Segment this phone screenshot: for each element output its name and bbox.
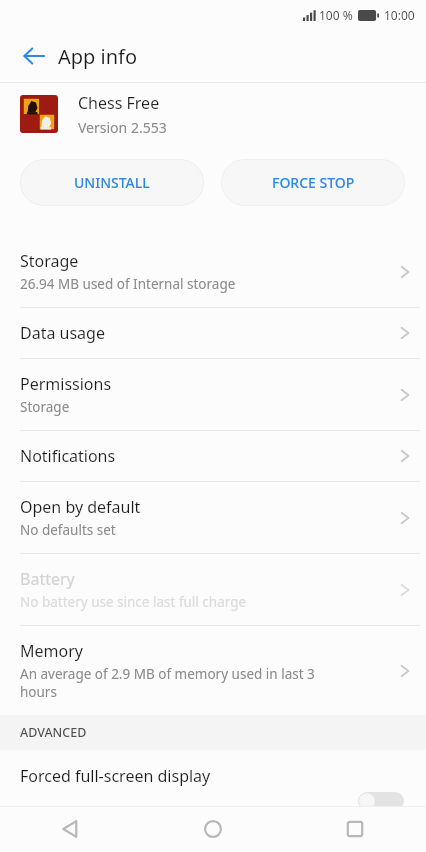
staticText: App info [58,43,138,70]
staticText: Permissions [20,373,112,395]
staticText: Chess Free [78,92,160,114]
button[interactable]: Back [12,34,56,78]
staticText: Storage [20,398,70,416]
button[interactable]: Forced full-screen display [0,750,426,802]
button[interactable]: Permissions [0,359,426,430]
staticText: No battery use since last full charge [20,593,247,611]
staticText: An average of 2.9 MB of memory used in l… [20,665,340,701]
button[interactable]: Storage [0,236,426,307]
button[interactable]: Data usage [0,308,426,358]
staticText: No defaults set [20,521,116,539]
button[interactable]: Recents [284,806,426,852]
staticText: ADVANCED [20,724,87,741]
staticText: Notifications [20,445,116,467]
staticText: Forced full-screen display [20,765,211,787]
staticText: Memory [20,640,83,662]
button[interactable]: Home [142,806,284,852]
staticText: Storage [20,250,79,272]
button[interactable]: UNINSTALL [20,159,204,206]
staticText: UNINSTALL [74,173,150,192]
button[interactable]: FORCE STOP [221,159,405,206]
button[interactable]: Battery [0,554,426,625]
button[interactable]: Notifications [0,431,426,481]
button[interactable]: Back [0,806,142,852]
staticText: Open by default [20,496,141,518]
staticText: Version 2.553 [78,118,167,137]
staticText: 10:00 [384,7,415,23]
button[interactable]: Memory [0,626,426,715]
staticText: Battery [20,568,75,590]
button[interactable]: Open by default [0,482,426,553]
staticText: FORCE STOP [272,173,355,192]
staticText: Data usage [20,322,105,344]
staticText: 100 % [319,7,353,23]
staticText: 26.94 MB used of Internal storage [20,275,236,293]
